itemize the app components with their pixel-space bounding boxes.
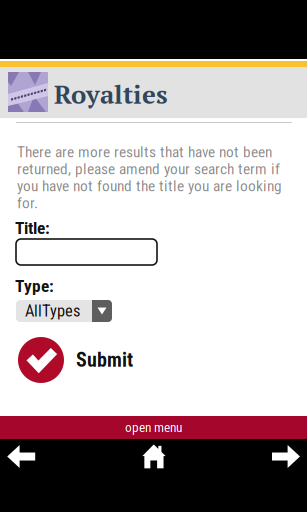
button[interactable]: AllTypes xyxy=(16,300,112,322)
button[interactable]: open menu xyxy=(0,416,307,439)
staticText: There are more results that have not bee… xyxy=(17,143,282,212)
staticText: open menu xyxy=(125,420,182,435)
staticText: Submit xyxy=(76,348,133,372)
button[interactable]: Forward xyxy=(205,439,307,512)
staticText: Title: xyxy=(15,218,50,234)
button[interactable]: Back xyxy=(0,439,102,512)
staticText: AllTypes xyxy=(25,301,80,321)
staticText: Royalties xyxy=(54,77,168,105)
staticText: Type: xyxy=(15,276,54,292)
button[interactable]: Home xyxy=(102,439,205,512)
button[interactable]: Submit xyxy=(18,337,178,383)
